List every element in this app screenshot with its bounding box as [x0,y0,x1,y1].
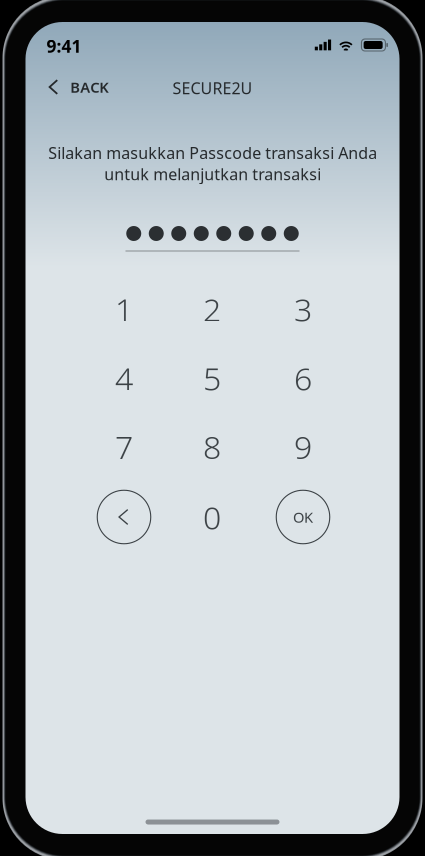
staticText: 9:41 [46,34,81,57]
staticText: 1 [115,288,133,330]
staticText: 6 [294,357,312,399]
staticText: 7 [115,425,133,468]
staticText: Silakan masukkan Passcode transaksi Anda… [48,142,377,185]
button[interactable]: 0 [168,483,256,551]
button[interactable]: Delete [80,483,168,551]
button[interactable]: 3 [259,275,347,343]
staticText: 5 [203,357,221,399]
button[interactable]: 7 [80,412,168,480]
staticText: OK [293,507,313,527]
button[interactable]: 4 [80,344,168,412]
button[interactable]: 1 [80,275,168,343]
staticText: 0 [203,496,221,538]
button[interactable]: 2 [168,275,256,343]
staticText: 3 [294,288,312,330]
button[interactable]: BACK [33,66,124,108]
staticText: 2 [203,288,221,330]
button[interactable]: 6 [259,344,347,412]
staticText: 8 [203,425,221,468]
button[interactable]: 8 [168,412,256,480]
staticText: 4 [115,357,133,399]
staticText: 9 [294,425,312,468]
button[interactable]: 9 [259,412,347,480]
button[interactable]: OK [259,483,347,551]
staticText: SECURE2U [172,77,252,99]
button[interactable]: 5 [168,344,256,412]
staticText: BACK [70,77,108,97]
